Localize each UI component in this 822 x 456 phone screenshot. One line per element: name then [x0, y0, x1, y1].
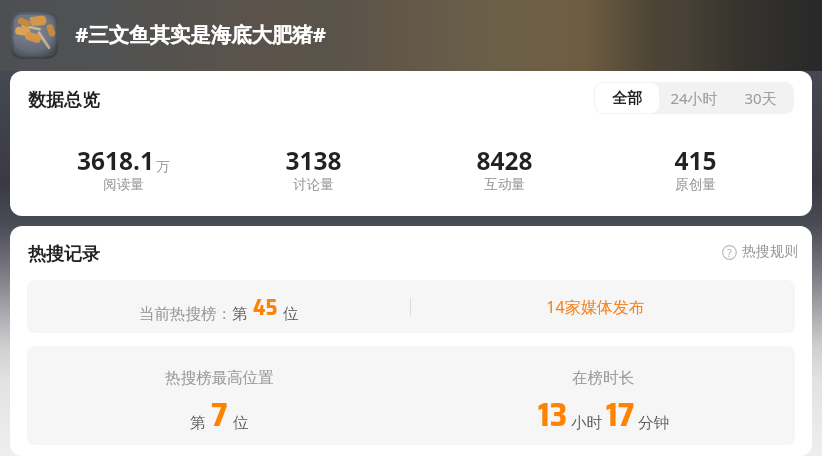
staticText: 13 — [538, 389, 568, 441]
button[interactable]: 当前热搜榜： — [27, 280, 410, 333]
staticText: 阅读量 — [103, 176, 144, 193]
staticText: 17 — [606, 389, 635, 441]
staticText: 8428 — [476, 144, 533, 177]
staticText: 24小时 — [670, 88, 718, 108]
staticText: 位 — [233, 413, 249, 433]
other: Hot search rules — [722, 245, 737, 260]
staticText: #三文鱼其实是海底大肥猪# — [75, 20, 326, 48]
button[interactable]: 8428 — [409, 144, 600, 194]
button[interactable]: Hot search rules — [10, 243, 798, 261]
button[interactable]: 热搜榜最高位置 — [27, 346, 411, 445]
staticText: 14家媒体发布 — [546, 296, 645, 318]
button[interactable]: 3138 — [218, 144, 409, 194]
button[interactable]: 3618.1 — [28, 144, 218, 194]
staticText: 30天 — [744, 88, 777, 108]
staticText: 万 — [156, 158, 170, 175]
staticText: 全部 — [612, 89, 642, 108]
staticText: 讨论量 — [293, 176, 334, 193]
staticText: 45 — [253, 290, 278, 325]
button[interactable]: 在榜时长 — [411, 346, 795, 445]
staticText: 分钟 — [638, 413, 669, 433]
staticText: 小时 — [571, 413, 602, 433]
staticText: 3138 — [285, 144, 342, 177]
button[interactable]: 30天 — [727, 83, 794, 113]
staticText: 原创量 — [675, 176, 716, 193]
button[interactable]: 415 — [600, 144, 791, 194]
button[interactable]: Topic image — [11, 12, 58, 59]
button[interactable]: 全部 — [595, 83, 659, 113]
staticText: 互动量 — [484, 176, 525, 193]
button[interactable]: 14家媒体发布 — [411, 280, 795, 333]
staticText: 3618.1 — [77, 144, 154, 177]
staticText: 在榜时长 — [572, 368, 634, 388]
staticText: 热搜榜最高位置 — [165, 368, 274, 388]
staticText: 7 — [211, 389, 228, 441]
staticText: 当前热搜榜： — [139, 304, 232, 324]
staticText: 第 — [190, 413, 206, 433]
button[interactable]: 24小时 — [660, 83, 727, 113]
staticText: 数据总览 — [28, 89, 100, 112]
staticText: 热搜规则 — [742, 243, 798, 261]
staticText: 位 — [283, 304, 299, 324]
staticText: 第 — [232, 304, 248, 324]
staticText: ? — [727, 245, 732, 260]
staticText: 热搜记录 — [28, 243, 100, 266]
staticText: 415 — [674, 144, 717, 177]
